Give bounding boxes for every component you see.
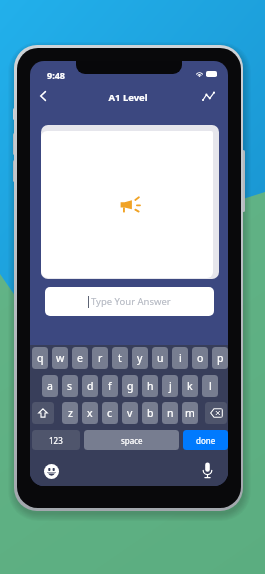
staticText: c [107, 406, 113, 420]
staticText: g [127, 379, 134, 393]
staticText: space [121, 435, 143, 446]
button[interactable]: c [102, 402, 118, 424]
staticText: done [196, 435, 216, 446]
staticText: p [217, 351, 224, 365]
button[interactable]: n [162, 402, 178, 424]
button[interactable]: Emoji [44, 464, 59, 479]
staticText: o [197, 351, 204, 365]
button[interactable]: z [62, 402, 78, 424]
staticText: d [87, 379, 94, 393]
staticText: h [147, 379, 154, 393]
staticText: Type Your Answer [91, 295, 171, 308]
staticText: n [167, 406, 174, 420]
button[interactable]: a [42, 375, 58, 397]
staticText: 123 [49, 435, 63, 446]
button[interactable]: y [132, 347, 148, 369]
staticText: j [169, 379, 172, 393]
button[interactable]: r [92, 347, 108, 369]
button[interactable]: b [142, 402, 158, 424]
staticText: w [56, 351, 65, 365]
staticText: m [185, 406, 195, 420]
button[interactable]: d [82, 375, 98, 397]
button[interactable]: g [122, 375, 138, 397]
button[interactable]: Statistics [196, 84, 220, 108]
button[interactable]: l [202, 375, 218, 397]
button[interactable]: f [102, 375, 118, 397]
staticText: v [127, 406, 133, 420]
staticText: A1 Level [108, 91, 148, 104]
staticText: k [187, 379, 193, 393]
button[interactable]: s [62, 375, 78, 397]
button[interactable]: w [52, 347, 68, 369]
button[interactable]: Type Your Answer [45, 287, 214, 316]
button[interactable]: 123 [32, 430, 80, 450]
staticText: s [67, 379, 73, 393]
button[interactable]: k [182, 375, 198, 397]
staticText: y [137, 351, 143, 365]
button[interactable]: u [152, 347, 168, 369]
button[interactable]: done [183, 430, 228, 450]
button[interactable]: j [162, 375, 178, 397]
button[interactable] [41, 131, 213, 278]
button[interactable]: q [32, 347, 48, 369]
staticText: 9:48 [47, 69, 65, 81]
button[interactable]: m [182, 402, 198, 424]
staticText: a [47, 379, 53, 393]
staticText: t [118, 351, 122, 365]
staticText: z [68, 406, 73, 420]
button[interactable] [205, 402, 227, 424]
button[interactable]: p [212, 347, 228, 369]
button[interactable]: e [72, 347, 88, 369]
button[interactable]: Back [31, 84, 55, 108]
staticText: l [209, 379, 212, 393]
button[interactable]: x [82, 402, 98, 424]
button[interactable]: Voice input [202, 462, 213, 480]
button[interactable]: h [142, 375, 158, 397]
staticText: i [179, 351, 182, 365]
staticText: q [37, 351, 44, 365]
button[interactable]: t [112, 347, 128, 369]
staticText: b [147, 406, 154, 420]
staticText: x [87, 406, 93, 420]
button[interactable]: i [172, 347, 188, 369]
button[interactable]: v [122, 402, 138, 424]
staticText: u [157, 351, 164, 365]
button[interactable]: o [192, 347, 208, 369]
staticText: r [98, 351, 103, 365]
staticText: f [108, 379, 112, 393]
button[interactable]: space [84, 430, 179, 450]
staticText: e [77, 351, 83, 365]
button[interactable] [32, 402, 54, 424]
